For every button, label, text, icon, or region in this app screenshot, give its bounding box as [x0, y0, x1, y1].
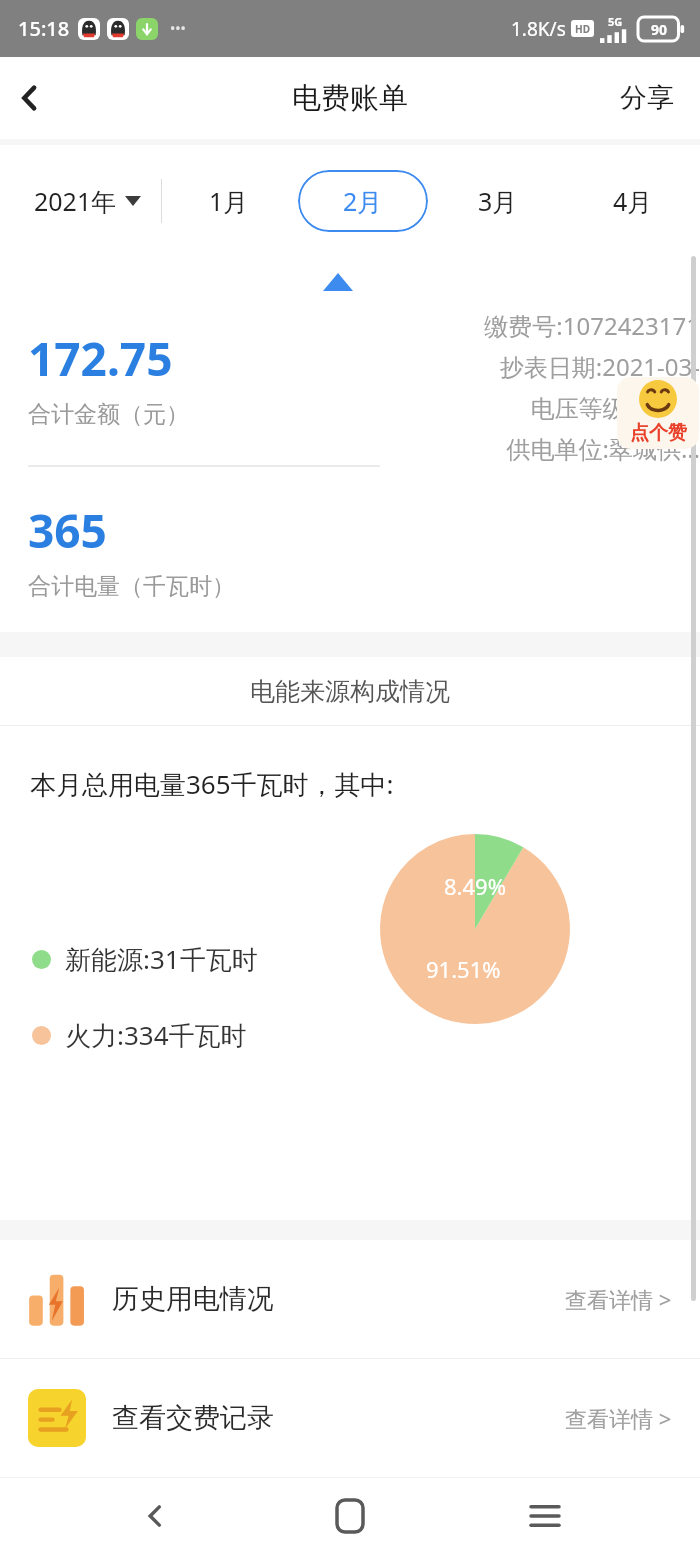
button[interactable]: 分享	[612, 73, 682, 123]
staticText: 8.49%	[444, 871, 506, 901]
staticText: 查看交费记录	[112, 1401, 274, 1435]
button[interactable]: 3月	[433, 170, 563, 232]
staticText: 2月	[343, 184, 383, 218]
button[interactable]: 返回	[0, 68, 60, 128]
staticText: 电压等级:交流…	[530, 391, 700, 424]
staticText: 合计电量（千瓦时）	[28, 572, 235, 601]
staticText: 查看详情 >	[565, 1403, 672, 1433]
staticText: 分享	[620, 81, 674, 115]
staticText: 15:18	[18, 15, 70, 42]
staticText: •••	[170, 19, 186, 38]
button[interactable]: 菜单	[505, 1477, 585, 1555]
button[interactable]: 查看交费记录	[0, 1359, 700, 1477]
button[interactable]: 2021年	[28, 178, 147, 224]
staticText: 缴费号:1072423171	[484, 309, 700, 342]
staticText: 1.8K/s	[511, 16, 566, 42]
staticText: 火力:334千瓦时	[65, 1017, 247, 1053]
staticText: 新能源:31千瓦时	[65, 941, 258, 977]
staticText: 电费账单	[292, 80, 408, 117]
staticText: 合计金额（元）	[28, 400, 189, 429]
button[interactable]: 1月	[164, 170, 294, 232]
staticText: 5G	[608, 14, 623, 29]
staticText: 本月总用电量365千瓦时，其中:	[30, 766, 394, 802]
button[interactable]: 4月	[568, 170, 698, 232]
button[interactable]: 2月	[298, 170, 428, 232]
staticText: 91.51%	[426, 954, 501, 984]
button[interactable]: 主页	[310, 1477, 390, 1555]
staticText: 4月	[613, 184, 653, 218]
staticText: 抄表日期:2021-03-	[499, 350, 700, 383]
button[interactable]: 点个赞	[617, 377, 699, 449]
staticText: 供电单位:翠城供…	[506, 432, 700, 465]
staticText: 点个赞	[630, 421, 687, 445]
staticText: 90	[651, 20, 668, 39]
staticText: 查看详情 >	[565, 1284, 672, 1314]
button[interactable]: 返回	[115, 1477, 195, 1555]
staticText: HD	[575, 22, 590, 36]
staticText: 1月	[209, 184, 249, 218]
staticText: 电能来源构成情况	[250, 676, 450, 707]
button[interactable]: 历史用电情况	[0, 1240, 700, 1358]
staticText: 历史用电情况	[112, 1282, 274, 1316]
staticText: 2021年	[34, 184, 117, 218]
staticText: 172.75	[28, 327, 173, 390]
staticText: 365	[28, 499, 107, 562]
staticText: 3月	[478, 184, 518, 218]
